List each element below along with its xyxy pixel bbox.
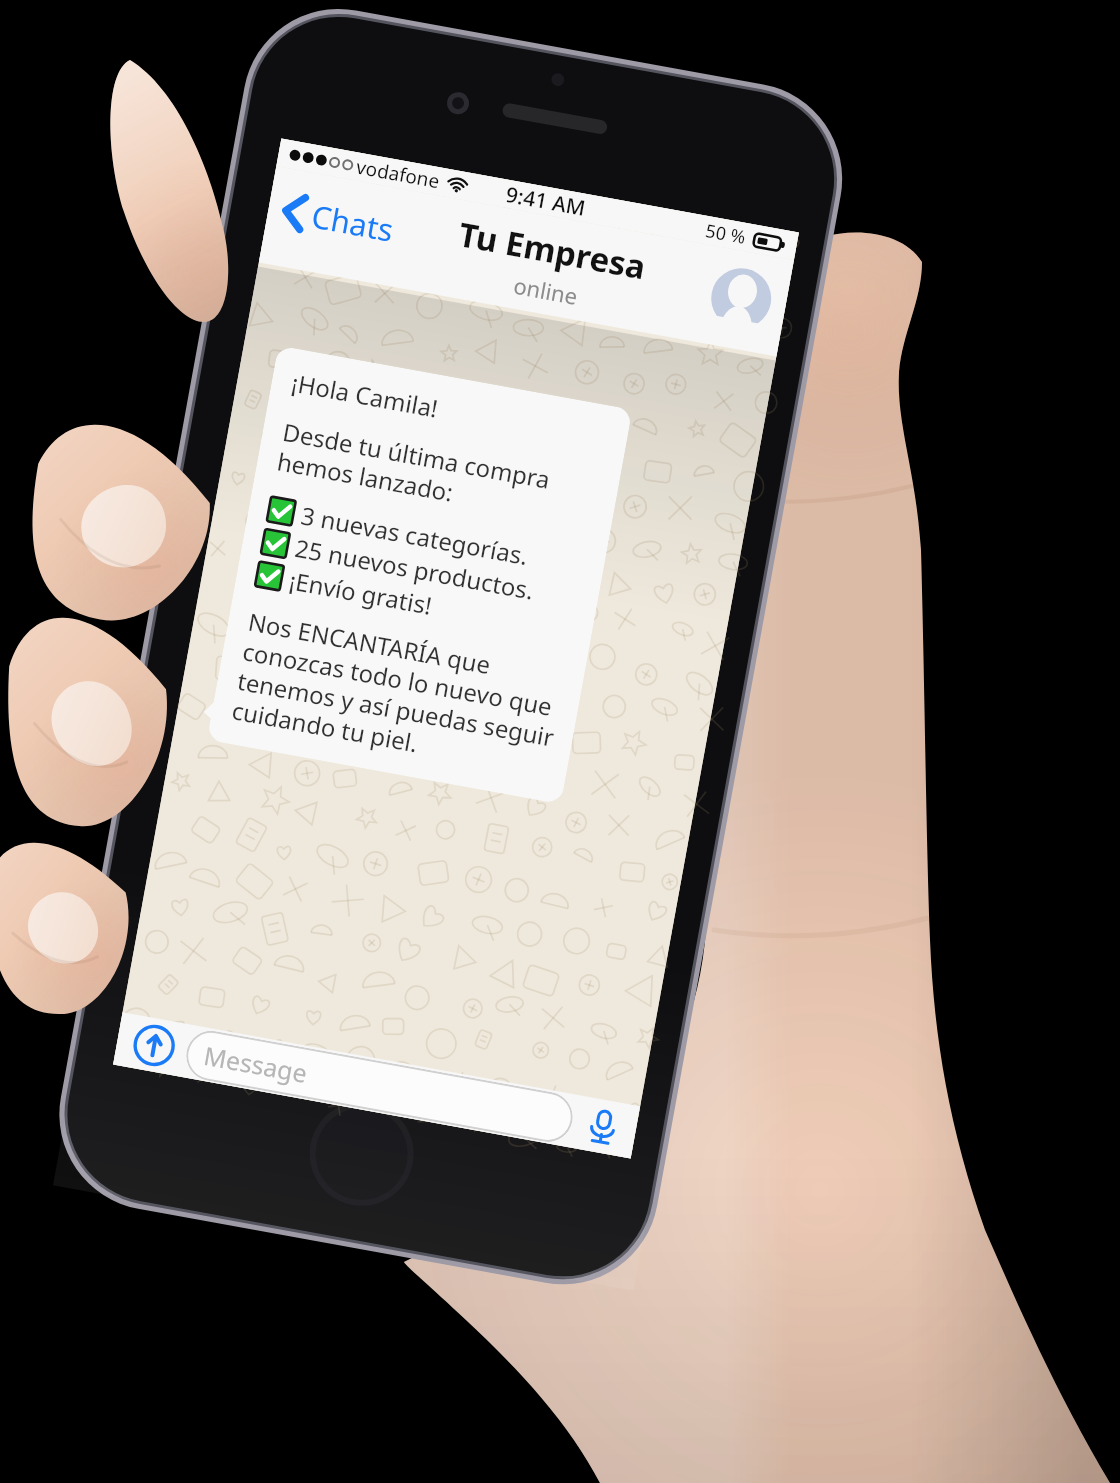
button[interactable]: ¡Hola Camila!	[207, 345, 632, 804]
staticText: Chats	[308, 195, 398, 251]
staticText: vodafone	[354, 154, 442, 194]
button[interactable]: Voice message	[581, 1105, 625, 1149]
staticText: 9:41 AM	[504, 180, 588, 222]
staticText: ¡Hola Camila!	[289, 366, 442, 425]
staticText: 25 nuevos productos.	[293, 531, 537, 607]
staticText: ¡Envío gratis!	[287, 563, 435, 622]
button[interactable]: Chats	[276, 186, 401, 254]
staticText: 3 nuevas categorías.	[298, 498, 532, 572]
button[interactable]: Message	[182, 1027, 577, 1146]
staticText: Tu Empresa	[455, 211, 650, 289]
button[interactable]: Contact avatar	[706, 263, 776, 333]
staticText: Desde tu última compra hemos lanzado:	[275, 415, 553, 525]
staticText: Nos ENCANTARÍA que conozcas todo lo nuev…	[229, 605, 567, 783]
staticText: 50 %	[703, 218, 748, 250]
staticText: online	[511, 270, 581, 311]
button[interactable]: Attach	[130, 1021, 178, 1070]
staticText: Message	[201, 1038, 311, 1090]
